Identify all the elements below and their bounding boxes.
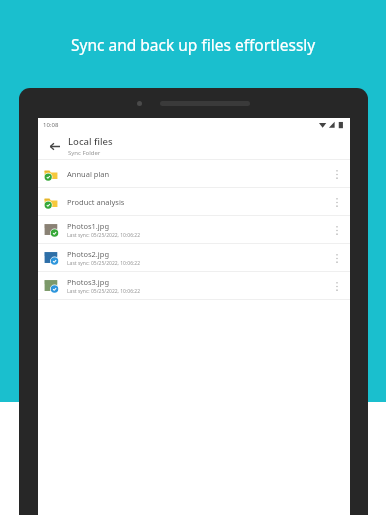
button[interactable]: Photos3.jpg <box>38 272 350 300</box>
staticText: Sync and back up files effortlessly <box>71 34 316 55</box>
button[interactable]: More options <box>330 163 344 185</box>
button[interactable]: Photos1.jpg <box>38 216 350 244</box>
staticText: Sync Folder <box>68 149 101 157</box>
staticText: Last sync: 05/25/2022, 10:06:22 <box>67 288 141 295</box>
staticText: Local files <box>68 135 113 148</box>
staticText: Last sync: 05/25/2022, 10:06:22 <box>67 232 141 239</box>
staticText: Product analysis <box>67 197 125 207</box>
button[interactable]: Annual plan <box>38 160 350 188</box>
staticText: Photos1.jpg <box>67 221 110 231</box>
staticText: 10:08 <box>43 121 59 129</box>
button[interactable]: More options <box>330 191 344 213</box>
button[interactable]: More options <box>330 247 344 269</box>
button[interactable]: Product analysis <box>38 188 350 216</box>
staticText: Last sync: 05/25/2022, 10:06:22 <box>67 260 141 267</box>
button[interactable]: More options <box>330 275 344 297</box>
button[interactable]: Back <box>44 136 64 156</box>
button[interactable]: More options <box>330 219 344 241</box>
staticText: Annual plan <box>67 169 110 179</box>
staticText: Photos3.jpg <box>67 277 110 287</box>
button[interactable]: Photos2.jpg <box>38 244 350 272</box>
staticText: Photos2.jpg <box>67 249 110 259</box>
